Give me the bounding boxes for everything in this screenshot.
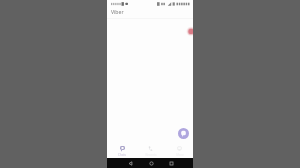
button[interactable]: Back [125, 158, 135, 168]
button[interactable]: New chat [178, 128, 189, 139]
staticText: Chats [118, 153, 126, 157]
staticText: Recents [145, 153, 157, 157]
button[interactable]: Recents [136, 142, 165, 159]
button[interactable]: Home [146, 158, 156, 168]
button[interactable]: Chats [108, 142, 136, 159]
button[interactable]: More [165, 142, 193, 159]
button[interactable]: Recent apps [166, 158, 176, 168]
staticText: Viber [111, 9, 124, 16]
staticText: More [176, 153, 184, 157]
